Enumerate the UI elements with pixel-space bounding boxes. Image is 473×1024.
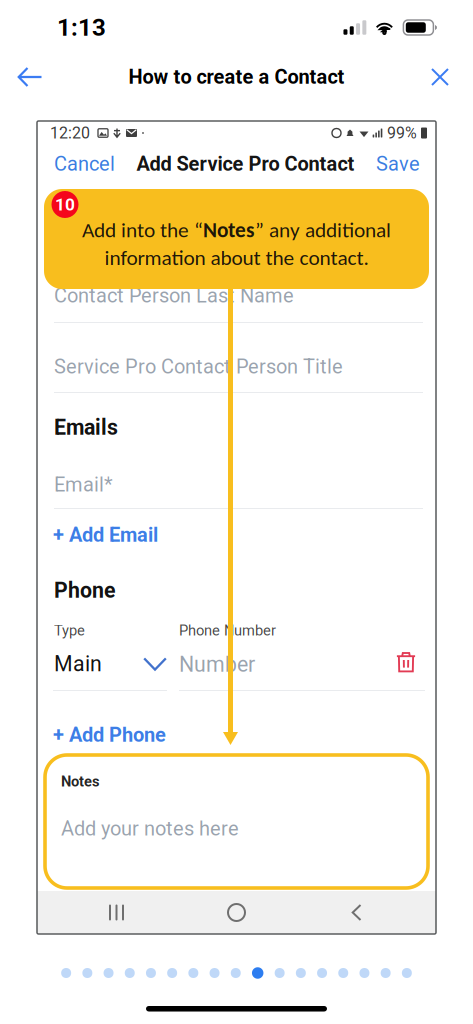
staticText: Type [54, 622, 85, 639]
button[interactable]: Back [4, 55, 56, 99]
staticText: Add into the “Notes” any additional [82, 217, 391, 243]
button[interactable]: Cancel [54, 152, 115, 176]
button[interactable]: + Add Email [53, 522, 163, 548]
staticText: Add your notes here [61, 817, 239, 840]
staticText: information about the contact. [104, 245, 368, 271]
staticText: + Add Phone [53, 723, 166, 747]
staticText: Number [179, 652, 255, 677]
button[interactable]: Save [376, 152, 420, 176]
button[interactable]: Main [54, 649, 167, 679]
staticText: 1:13 [57, 13, 106, 41]
button[interactable]: Recents [56, 891, 176, 933]
staticText: 12:20 [50, 124, 90, 142]
staticText: Emails [54, 415, 118, 440]
staticText: 10 [55, 194, 75, 215]
staticText: Add Service Pro Contact [136, 152, 354, 176]
staticText: Main [54, 651, 102, 676]
staticText: 99% [387, 124, 417, 142]
button[interactable]: Delete phone number [389, 645, 423, 679]
staticText: Phone [54, 578, 116, 603]
staticText: How to create a Contact [128, 65, 344, 89]
staticText: Save [376, 152, 420, 176]
staticText: Cancel [54, 152, 115, 176]
staticText: + Add Email [53, 523, 158, 547]
button[interactable]: Back [296, 891, 416, 933]
button[interactable]: + Add Phone [53, 722, 171, 748]
staticText: Service Pro Contact Person Title [54, 355, 343, 378]
staticText: Contact Person Last Name [54, 284, 294, 307]
staticText: Phone Number [179, 622, 276, 639]
staticText: Email* [54, 473, 113, 496]
staticText: Notes [61, 773, 100, 790]
button[interactable]: Close [415, 55, 465, 99]
button[interactable]: Home [176, 891, 296, 933]
